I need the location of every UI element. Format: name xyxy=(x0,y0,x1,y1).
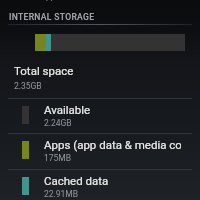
button[interactable]: Available xyxy=(0,98,200,134)
staticText: for new apps xyxy=(13,0,60,2)
staticText: INTERNAL STORAGE xyxy=(9,12,95,22)
staticText: Total space xyxy=(14,64,74,77)
staticText: 2.35GB xyxy=(14,81,42,91)
staticText: 22.91MB xyxy=(44,189,79,199)
staticText: Apps (app data & media content) xyxy=(44,138,181,151)
button[interactable]: Cached data xyxy=(0,169,200,200)
staticText: 2.24GB xyxy=(44,118,72,128)
staticText: Available xyxy=(44,103,91,116)
staticText: Cached data xyxy=(44,174,109,187)
button[interactable]: Apps (app data & media content) xyxy=(0,133,200,169)
staticText: 175MB xyxy=(44,153,72,163)
